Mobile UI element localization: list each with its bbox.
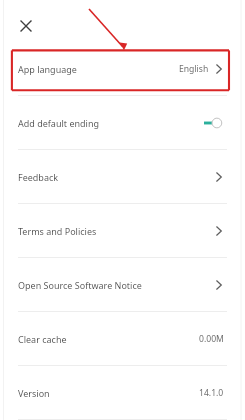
staticText: Terms and Policies <box>18 225 97 237</box>
button[interactable]: Open Source Software Notice <box>0 258 245 311</box>
button[interactable]: Feedback <box>0 150 245 203</box>
button[interactable]: Close <box>12 12 40 40</box>
staticText: Clear cache <box>18 333 67 345</box>
button[interactable]: Clear cache <box>0 312 245 365</box>
staticText: App language <box>18 63 77 75</box>
staticText: Add default ending <box>18 117 99 129</box>
button[interactable]: App language <box>0 42 245 95</box>
staticText: English <box>179 63 209 75</box>
staticText: 0.00M <box>199 333 224 345</box>
staticText: 14.1.0 <box>199 387 224 399</box>
staticText: Feedback <box>18 171 59 183</box>
button[interactable]: Add default ending <box>0 96 245 149</box>
button[interactable]: Version <box>0 366 245 419</box>
staticText: Version <box>18 387 50 399</box>
staticText: Open Source Software Notice <box>18 279 142 291</box>
button[interactable]: Terms and Policies <box>0 204 245 257</box>
